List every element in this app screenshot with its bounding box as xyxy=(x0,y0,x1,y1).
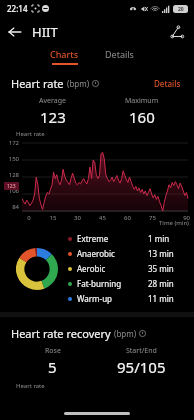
button[interactable]: Fat-burning xyxy=(68,276,182,291)
button[interactable]: Warm-up xyxy=(68,291,182,306)
staticText: Time (min) xyxy=(159,219,189,227)
staticText: 30 xyxy=(65,214,90,222)
staticText: 75 xyxy=(140,214,165,222)
staticText: Details xyxy=(105,48,134,60)
staticText: 95/105 xyxy=(117,357,166,377)
staticText: 15 xyxy=(41,214,65,222)
button[interactable]: Extreme xyxy=(68,231,182,246)
staticText: 20 xyxy=(178,6,184,13)
staticText: 0 xyxy=(17,214,41,222)
button[interactable]: Charts xyxy=(44,46,85,67)
staticText: Charts xyxy=(50,48,79,60)
staticText: (bpm) xyxy=(67,78,90,89)
staticText: 35 min xyxy=(148,263,182,274)
button[interactable]: Aerobic xyxy=(68,261,182,276)
button[interactable]: Details xyxy=(99,46,140,62)
staticText: Maximum xyxy=(125,96,159,106)
staticText: 90 xyxy=(165,214,190,222)
staticText: 28 min xyxy=(148,278,182,289)
staticText: Heart rate xyxy=(11,76,64,91)
staticText: Aerobic xyxy=(77,263,106,274)
staticText: 13 min xyxy=(148,248,182,259)
button[interactable]: Anaerobic xyxy=(68,246,182,261)
staticText: 123 xyxy=(40,107,66,127)
staticText: 22:14 xyxy=(7,3,28,14)
staticText: Extreme xyxy=(77,233,109,244)
staticText: 160 xyxy=(129,107,155,127)
staticText: 150 xyxy=(4,155,19,163)
staticText: Heart rate xyxy=(16,382,45,390)
staticText: Anaerobic xyxy=(77,248,115,259)
staticText: Heart rate xyxy=(16,130,45,138)
staticText: 45 xyxy=(90,214,115,222)
button[interactable]: Details xyxy=(152,76,183,91)
staticText: 106 xyxy=(4,187,19,195)
staticText: Heart rate recovery xyxy=(11,326,111,341)
staticText: 123 xyxy=(7,183,16,190)
staticText: 172 xyxy=(4,139,19,147)
staticText: Warm-up xyxy=(77,293,112,304)
staticText: 60 xyxy=(115,214,140,222)
staticText: Fat-burning xyxy=(77,278,122,289)
staticText: 128 xyxy=(4,171,19,179)
button[interactable]: Route segments xyxy=(164,19,190,45)
staticText: Details xyxy=(154,78,181,89)
staticText: 84 xyxy=(4,203,19,211)
staticText: Start/End xyxy=(126,346,157,356)
staticText: Rose xyxy=(45,346,61,356)
button[interactable]: Back xyxy=(0,17,29,46)
staticText: HIIT xyxy=(32,23,58,41)
staticText: Average xyxy=(39,96,66,106)
staticText: (bpm) xyxy=(114,328,137,339)
staticText: 11 min xyxy=(148,293,182,304)
staticText: 1 min xyxy=(148,233,182,244)
staticText: 5 xyxy=(48,357,57,377)
